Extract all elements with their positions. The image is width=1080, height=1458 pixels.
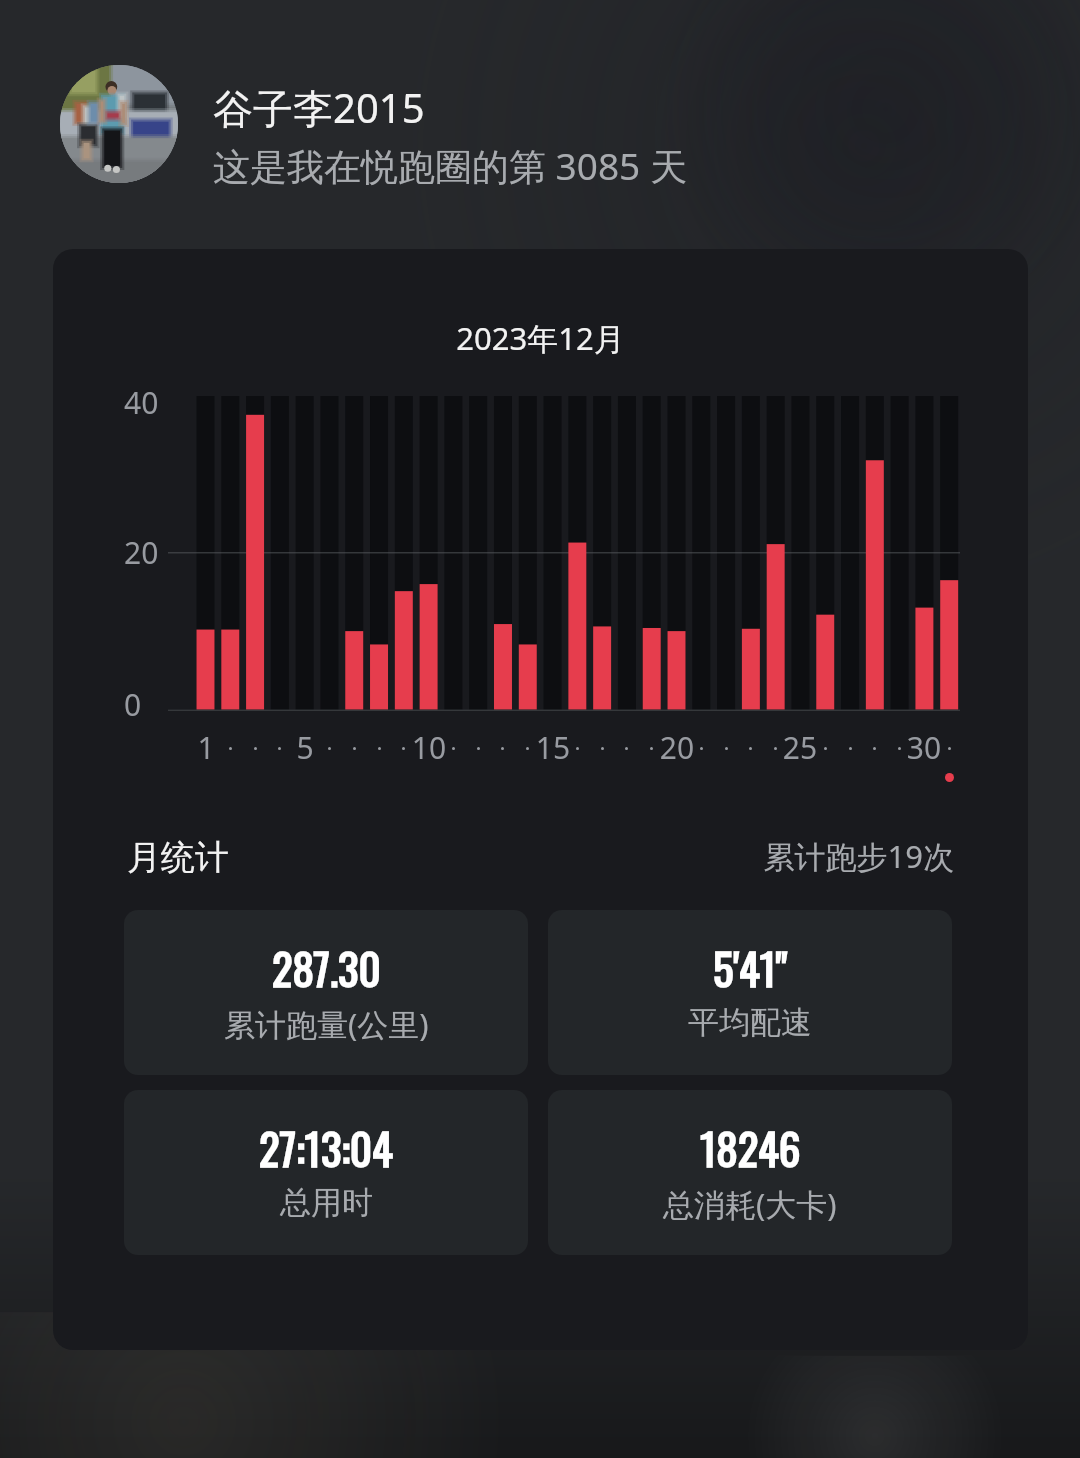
staticText: 累计跑步19次 [653,835,954,877]
staticText: 15 [523,727,583,768]
button[interactable]: Profile photo [56,60,696,188]
staticText: 总用时 [280,1183,373,1222]
staticText: 这是我在悦跑圈的第 3085 天 [213,140,687,191]
staticText: 10 [399,727,459,768]
staticText: 27:13:04 [259,1116,393,1180]
staticText: 30 [894,727,954,768]
button[interactable]: 27:13:04 [124,1090,528,1255]
staticText: 5'41" [713,936,788,1000]
button[interactable]: 5'41" [548,910,952,1075]
other: Profile photo [60,65,178,183]
staticText: 1 [176,727,236,768]
staticText: 40 [124,382,159,423]
staticText: 累计跑量(公里) [224,1003,429,1045]
staticText: 5 [275,727,335,768]
staticText: 20 [124,532,159,573]
staticText: 谷子李2015 [213,80,425,135]
button[interactable]: 287.30 [124,910,528,1075]
staticText: 0 [124,684,142,725]
staticText: 平均配速 [688,1003,812,1042]
staticText: 月统计 [127,836,229,879]
staticText: 总消耗(大卡) [663,1183,837,1225]
staticText: 20 [647,727,707,768]
staticText: 2023年12月 [53,317,1028,359]
staticText: 25 [770,727,830,768]
staticText: 18246 [700,1116,801,1180]
button[interactable]: 18246 [548,1090,952,1255]
staticText: 287.30 [272,936,381,1000]
